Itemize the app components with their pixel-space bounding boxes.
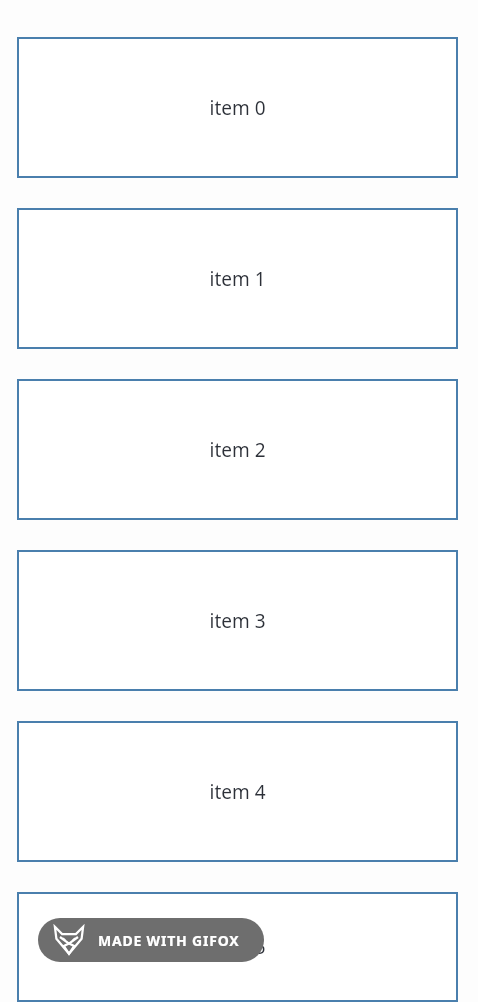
staticText: item 4: [209, 779, 266, 805]
staticText: item 0: [209, 95, 266, 121]
button[interactable]: item 1: [17, 208, 458, 349]
button[interactable]: item 5: [17, 892, 458, 1002]
staticText: item 5: [209, 934, 266, 960]
staticText: MADE WITH GIFOX: [98, 931, 240, 950]
button[interactable]: item 4: [17, 721, 458, 862]
staticText: item 3: [209, 608, 266, 634]
staticText: item 2: [209, 437, 266, 463]
button[interactable]: item 2: [17, 379, 458, 520]
button[interactable]: Made with Gifox: [38, 918, 264, 962]
button[interactable]: item 3: [17, 550, 458, 691]
button[interactable]: item 0: [17, 37, 458, 178]
staticText: item 1: [209, 266, 266, 292]
